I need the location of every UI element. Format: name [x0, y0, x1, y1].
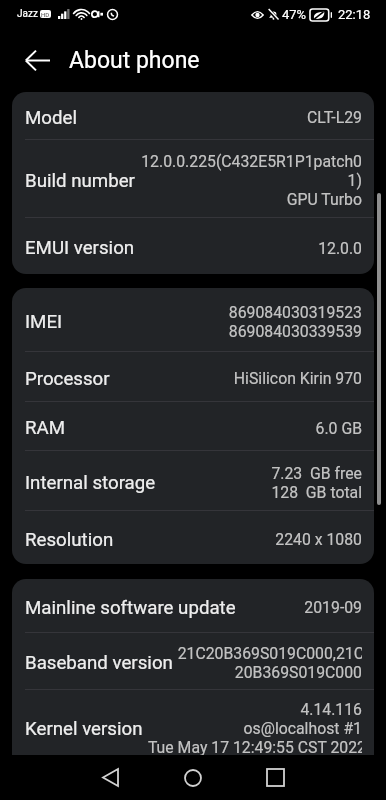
staticText: 47% [282, 7, 307, 22]
staticText: 12.0.0.225(C432E5R1P1patch0 [141, 152, 362, 171]
button[interactable]: Internal storage [12, 451, 374, 511]
staticText: 869084030339539 [228, 322, 362, 341]
staticText: HD [41, 11, 50, 18]
button[interactable]: Processor [12, 352, 374, 402]
staticText: About phone [69, 47, 200, 74]
button[interactable]: Home [164, 755, 222, 800]
staticText: 21C20B369S019C000,21C [177, 644, 362, 663]
staticText: Resolution [25, 529, 114, 551]
button[interactable]: Mainline software update [12, 579, 374, 633]
staticText: 1) [347, 171, 362, 190]
staticText: HiSilicon Kirin 970 [233, 369, 362, 388]
button[interactable]: Build number [12, 140, 374, 218]
button[interactable]: EMUI version [12, 218, 374, 274]
button[interactable]: RAM [12, 402, 374, 451]
staticText: 2019-09 [304, 598, 362, 617]
staticText: Tue May 17 12:49:55 CST 2022 [147, 738, 362, 755]
button[interactable]: Model [12, 92, 374, 140]
button[interactable]: Recent apps [246, 755, 304, 800]
staticText: 22:18 [338, 7, 371, 22]
staticText: 2240 x 1080 [275, 530, 362, 549]
button[interactable]: Resolution [12, 511, 374, 564]
staticText: Mainline software update [25, 597, 236, 619]
staticText: IMEI [25, 311, 63, 333]
staticText: 12.0.0 [318, 239, 362, 258]
staticText: RAM [25, 417, 66, 439]
button[interactable]: Kernel version [12, 690, 374, 755]
staticText: 4.14.116 [300, 700, 362, 719]
staticText: Internal storage [25, 472, 156, 494]
staticText: Jazz [17, 8, 38, 20]
staticText: Build number [25, 170, 135, 192]
staticText: Baseband version [25, 652, 173, 674]
button[interactable]: Back [81, 755, 139, 800]
staticText: 6.0 GB [315, 419, 362, 438]
staticText: 128 GB total [271, 483, 362, 502]
staticText: GPU Turbo [286, 190, 362, 209]
staticText: Processor [25, 368, 110, 390]
button[interactable]: IMEI [12, 288, 374, 352]
staticText: 869084030319523 [228, 303, 362, 322]
staticText: CLT-L29 [307, 108, 362, 127]
button[interactable]: Baseband version [12, 633, 374, 690]
staticText: Model [25, 107, 77, 129]
button[interactable]: Back [18, 41, 56, 79]
staticText: EMUI version [25, 237, 135, 259]
staticText: os@localhost #1 [243, 719, 362, 738]
staticText: 20B369S019C000 [234, 663, 362, 682]
staticText: 7.23 GB free [271, 464, 362, 483]
staticText: Kernel version [25, 718, 143, 740]
